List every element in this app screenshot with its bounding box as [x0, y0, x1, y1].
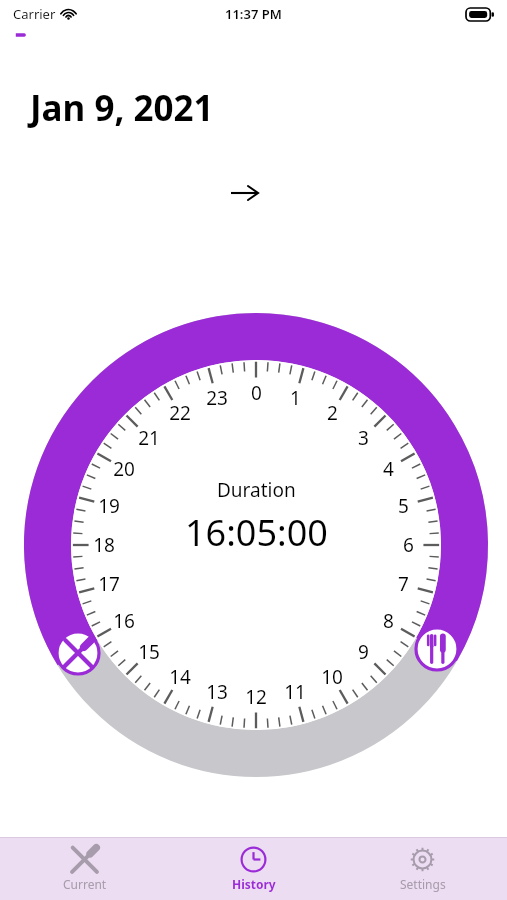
staticText: Current — [63, 876, 107, 892]
staticText: Settings — [400, 876, 446, 892]
staticText: 2 — [327, 400, 338, 426]
staticText: 11:37 PM — [225, 5, 282, 23]
staticText: 7 — [398, 571, 409, 597]
staticText: 6 — [403, 532, 414, 558]
staticText: 19 — [98, 493, 120, 519]
staticText: Carrier — [13, 5, 56, 23]
staticText: History — [232, 876, 276, 892]
staticText: Duration — [217, 477, 296, 503]
staticText: 0 — [251, 380, 262, 406]
button[interactable]: End time — [414, 626, 460, 672]
button[interactable]: Start time — [55, 630, 101, 676]
staticText: 13 — [206, 679, 228, 705]
staticText: 16 — [113, 608, 135, 634]
staticText: 17 — [98, 571, 120, 597]
staticText: 12 — [245, 684, 267, 710]
staticText: 9 — [358, 639, 369, 665]
staticText: 21 — [138, 425, 160, 451]
staticText: 14 — [169, 664, 191, 690]
staticText: 10 — [321, 664, 343, 690]
button[interactable]: History — [169, 838, 338, 900]
staticText: 3 — [358, 425, 369, 451]
staticText: 20 — [113, 456, 135, 482]
staticText: 8 — [383, 608, 394, 634]
staticText: 1 — [290, 385, 301, 411]
staticText: 23 — [206, 385, 228, 411]
staticText: 11 — [284, 679, 306, 705]
button[interactable]: Fasting History — [0, 30, 180, 38]
staticText: 16:05:00 — [185, 508, 328, 557]
staticText: 22 — [169, 400, 191, 426]
staticText: 4 — [383, 456, 394, 482]
staticText: 15 — [138, 639, 160, 665]
staticText: Jan 9, 2021 — [30, 84, 214, 132]
button[interactable]: Current — [0, 838, 169, 900]
staticText: 5 — [398, 493, 409, 519]
button[interactable]: Settings — [338, 838, 507, 900]
staticText: 18 — [93, 532, 115, 558]
